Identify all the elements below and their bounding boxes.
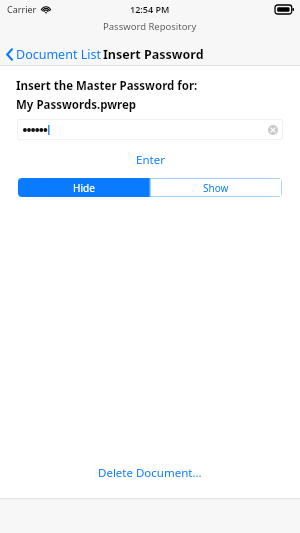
staticText: Hide bbox=[73, 181, 95, 195]
button[interactable]: Clear text bbox=[268, 125, 278, 135]
staticText: Carrier bbox=[7, 3, 37, 15]
button[interactable]: Clear text bbox=[17, 119, 283, 140]
staticText: Document List bbox=[16, 46, 101, 63]
button[interactable]: Document List bbox=[0, 44, 103, 64]
button[interactable]: Show bbox=[150, 178, 282, 197]
staticText: 12:54 PM bbox=[130, 3, 170, 15]
button[interactable]: Enter bbox=[0, 150, 300, 170]
staticText: Password Repository bbox=[103, 20, 197, 33]
staticText: Delete Document... bbox=[98, 465, 202, 481]
staticText: Insert the Master Password for: bbox=[16, 78, 198, 94]
staticText: Insert Password bbox=[103, 46, 204, 63]
staticText: Enter bbox=[136, 152, 165, 168]
button[interactable]: Delete Document... bbox=[0, 462, 300, 484]
button[interactable]: Hide bbox=[18, 178, 150, 197]
staticText: Show bbox=[203, 181, 229, 195]
staticText: My Passwords.pwrep bbox=[16, 97, 137, 113]
